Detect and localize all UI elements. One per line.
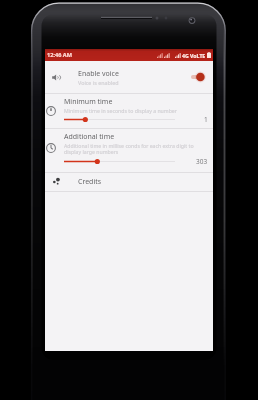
staticText: 1: [204, 115, 208, 124]
staticText: Minimum time: [64, 97, 113, 107]
staticText: Minimum time in seconds to display a num…: [64, 107, 177, 114]
button[interactable]: Additional time: [45, 129, 213, 172]
staticText: Additional time: [64, 132, 115, 142]
staticText: 12:46 AM: [47, 51, 72, 59]
button[interactable]: Credits: [45, 173, 213, 191]
button[interactable]: Enable voice: [45, 61, 213, 93]
staticText: 4G VoLTE: [182, 52, 206, 59]
staticText: Credits: [78, 177, 102, 187]
staticText: Enable voice: [78, 69, 119, 79]
staticText: Additional time in millise conds for eac…: [64, 142, 195, 156]
staticText: Voice is enabled: [78, 79, 119, 86]
staticText: 303: [196, 157, 208, 166]
button[interactable]: Minimum time: [45, 94, 213, 128]
